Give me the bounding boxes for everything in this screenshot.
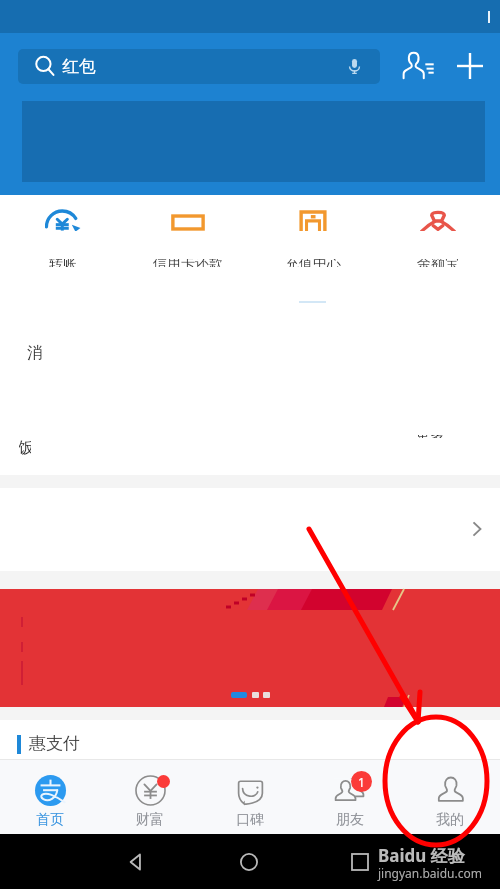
staticText: 消 [27,343,43,363]
staticText: 口碑 [236,811,264,829]
staticText: 红包 [62,56,96,77]
staticText: 首页 [36,811,64,829]
staticText: 1 [358,774,365,790]
staticText: Baidu 经验 [378,844,465,867]
button[interactable] [0,589,500,707]
button[interactable]: 财富 [100,760,200,834]
button[interactable]: 口碑 [200,760,300,834]
staticText: 惠支付 [29,733,80,754]
button[interactable]: 首页 [0,760,100,834]
staticText: 我的 [436,811,464,829]
button[interactable]: 余额宝 [375,195,500,285]
staticText: 更多 [416,435,444,438]
button[interactable]: 充值中心 [250,195,375,285]
button[interactable]: Home [233,846,265,878]
button[interactable]: 转账 [0,195,125,285]
button[interactable]: 红包 [18,49,380,84]
button[interactable]: 我的 [400,760,500,834]
staticText: jingyan.baidu.com [378,865,482,881]
button[interactable]: Contacts [396,44,440,88]
staticText: 饭 [19,438,30,458]
staticText: 朋友 [336,811,364,829]
button[interactable]: 1 [300,760,400,834]
staticText: 转账 [49,259,77,267]
button[interactable]: Back [120,846,152,878]
staticText: 余额宝 [417,259,459,267]
staticText: 信用卡还款 [153,259,223,267]
button[interactable]: Add [448,44,492,88]
button[interactable]: 信用卡还款 [125,195,250,285]
staticText: 充值中心 [285,259,341,267]
staticText: 财富 [136,811,164,829]
button[interactable]: More [460,512,494,546]
button[interactable]: Recents [344,846,376,878]
